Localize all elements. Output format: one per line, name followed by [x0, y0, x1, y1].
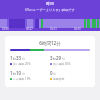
- staticText: 33: [16, 55, 22, 61]
- staticText: 23:05: [2, 27, 26, 31]
- staticText: 03:21: [50, 27, 74, 31]
- staticText: 分: [22, 57, 25, 61]
- staticText: 浅い睡眠 56%: [53, 62, 71, 66]
- staticText: 00:27: [26, 27, 50, 31]
- staticText: 1: [10, 70, 13, 76]
- button[interactable]: 1: [10, 70, 50, 81]
- staticText: 1: [10, 55, 13, 61]
- button[interactable]: 6時間12分: [5, 36, 95, 87]
- button[interactable]: 3: [50, 55, 90, 66]
- staticText: 10: [16, 70, 22, 76]
- staticText: レム睡眠 19%: [13, 77, 31, 81]
- staticText: 分: [53, 72, 56, 76]
- staticText: 3: [50, 55, 53, 61]
- staticText: 分: [22, 72, 25, 76]
- button[interactable]: 0: [50, 70, 90, 81]
- staticText: 昨日: [46, 1, 54, 6]
- staticText: 6%のユーザーよりも長い睡眠です: [25, 8, 75, 12]
- button[interactable]: 1: [10, 55, 50, 66]
- staticText: 時: [13, 57, 16, 61]
- staticText: 時: [13, 72, 16, 76]
- staticText: 29: [56, 55, 62, 61]
- staticText: 覚醒状態: [53, 77, 65, 81]
- staticText: 0: [50, 70, 53, 76]
- staticText: 6時間12分: [10, 40, 90, 46]
- staticText: 時: [53, 57, 56, 61]
- staticText: 04:35: [74, 27, 98, 31]
- staticText: 分: [62, 57, 65, 61]
- staticText: 深い睡眠 25%: [13, 62, 31, 66]
